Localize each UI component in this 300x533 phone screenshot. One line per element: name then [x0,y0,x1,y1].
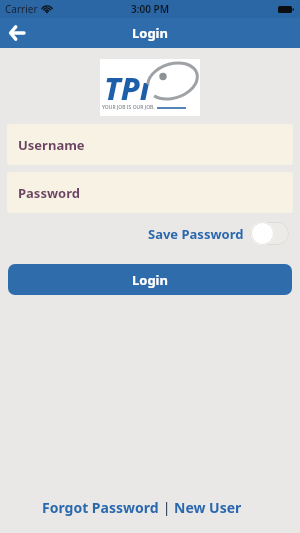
staticText: Save Password [148,225,244,243]
button[interactable]: Login [8,264,292,295]
button[interactable]: Username [7,124,293,165]
staticText: TPı [104,67,150,109]
staticText: 3:00 PM [131,2,169,16]
staticText: YOUR JOB IS OUR JOB. [102,104,155,111]
staticText: Password [18,184,80,202]
staticText: Login [132,271,168,289]
staticText: Carrier [5,2,38,16]
button[interactable] [251,222,289,245]
button[interactable]: Forgot Password [42,498,159,517]
button[interactable]: New User [174,498,242,517]
staticText: Login [132,24,168,42]
staticText: | [159,498,174,517]
button[interactable]: Password [7,172,293,213]
button[interactable] [0,18,34,48]
staticText: Username [18,136,85,154]
